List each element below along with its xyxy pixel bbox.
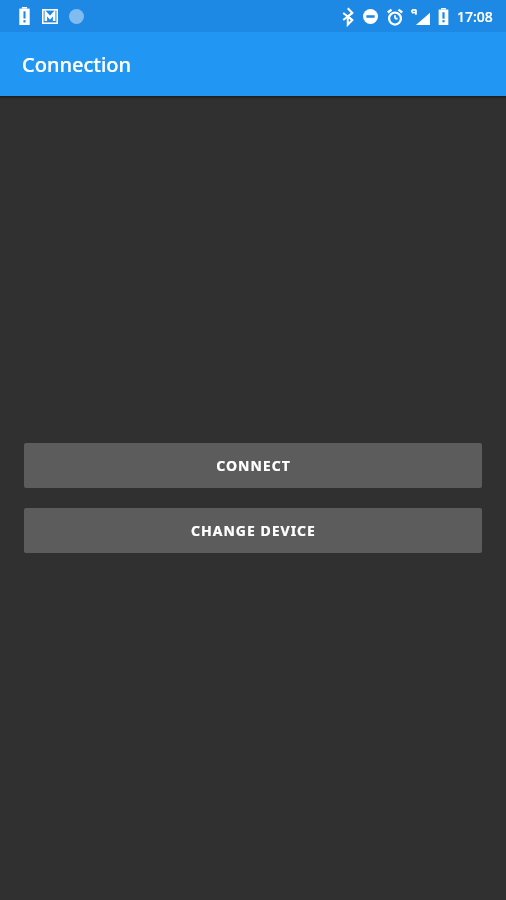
other: Gmail [42,9,58,24]
staticText: CONNECT [216,456,291,475]
staticText: Connection [22,51,132,78]
other: Battery [438,8,449,25]
other: Mobile signal 4G [411,9,430,25]
button[interactable]: CONNECT [24,443,482,488]
button[interactable]: CHANGE DEVICE [24,508,482,553]
other: Do not disturb [363,9,378,24]
other: Bluetooth [342,8,354,25]
other: Alarm [387,9,403,25]
other: Battery alert [18,7,31,25]
staticText: 17:08 [457,7,493,26]
staticText: CHANGE DEVICE [191,521,316,540]
other: Notification [69,9,84,24]
